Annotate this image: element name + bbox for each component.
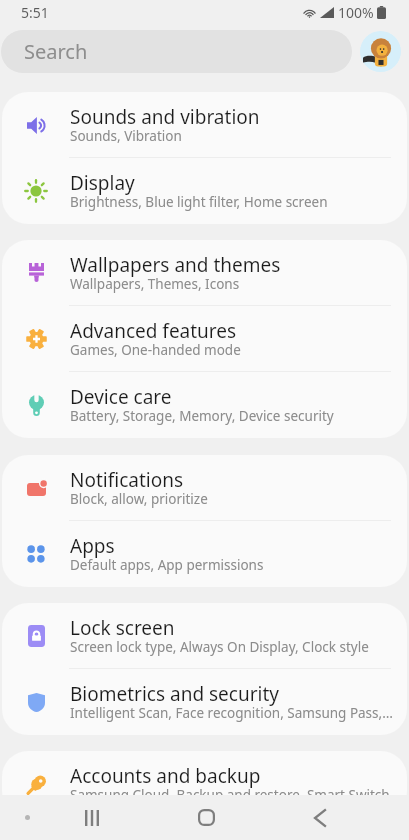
staticText: Lock screen	[70, 615, 175, 641]
staticText: Biometrics and security	[70, 681, 280, 707]
staticText: Wallpapers, Themes, Icons	[70, 275, 240, 293]
button[interactable]: Sounds and vibration	[2, 92, 407, 158]
staticText: Apps	[70, 533, 115, 559]
staticText: Device care	[70, 384, 172, 410]
button[interactable]: Biometrics and security	[2, 669, 407, 735]
button[interactable]: Home	[149, 795, 263, 840]
button[interactable]: Recent apps	[34, 795, 149, 840]
button[interactable]: Notifications	[2, 455, 407, 521]
staticText: Display	[70, 170, 135, 196]
button[interactable]: Display	[2, 158, 407, 224]
button[interactable]: Lock screen	[2, 603, 407, 669]
staticText: Games, One-handed mode	[70, 341, 241, 359]
staticText: 100%	[338, 3, 374, 22]
button[interactable]: Apps	[2, 521, 407, 587]
staticText: Notifications	[70, 467, 184, 493]
staticText: Block, allow, prioritize	[70, 490, 208, 508]
staticText: Wallpapers and themes	[70, 252, 281, 278]
staticText: Intelligent Scan, Face recognition, Sams…	[70, 704, 393, 722]
button[interactable]: Back	[263, 795, 377, 840]
button[interactable]: Accounts and backup	[2, 751, 407, 817]
staticText: 5:51	[21, 3, 49, 22]
staticText: Sounds, Vibration	[70, 127, 182, 145]
button[interactable]: Wallpapers and themes	[2, 240, 407, 306]
button[interactable]: Profile	[360, 31, 401, 72]
staticText: Search	[24, 38, 88, 65]
staticText: Default apps, App permissions	[70, 556, 264, 574]
staticText: Sounds and vibration	[70, 104, 260, 130]
staticText: Battery, Storage, Memory, Device securit…	[70, 407, 334, 425]
button[interactable]: Device care	[2, 372, 407, 438]
staticText: Screen lock type, Always On Display, Clo…	[70, 638, 369, 656]
staticText: Brightness, Blue light filter, Home scre…	[70, 193, 328, 211]
staticText: Accounts and backup	[70, 763, 261, 789]
staticText: Advanced features	[70, 318, 237, 344]
button[interactable]: Search	[1, 30, 352, 73]
button[interactable]: Advanced features	[2, 306, 407, 372]
staticText: Samsung Cloud, Backup and restore, Smart…	[70, 786, 390, 804]
